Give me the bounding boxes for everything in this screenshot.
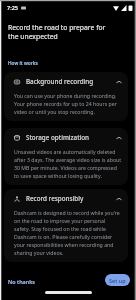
staticText: Storage optimization: [26, 133, 90, 142]
staticText: Record the road to prepare for the unexp…: [8, 23, 112, 41]
staticText: How it works: [8, 60, 38, 67]
button[interactable]: How it works: [6, 58, 40, 69]
staticText: You can use your phone during recording.…: [14, 92, 122, 115]
button[interactable]: Storage optimization: [4, 128, 128, 185]
button[interactable]: Set up: [105, 274, 130, 286]
other: Collapse: [116, 79, 122, 85]
staticText: 7:25: [7, 4, 18, 11]
other: Collapse: [116, 135, 122, 141]
staticText: No thanks: [8, 278, 35, 285]
button[interactable]: Background recording: [4, 72, 128, 121]
button[interactable]: Record responsibly: [4, 189, 128, 262]
other: Collapse: [116, 196, 122, 202]
staticText: Unsaved videos are automatically deleted…: [14, 148, 122, 179]
staticText: Dashcam is designed to record while you'…: [14, 209, 122, 256]
staticText: Background recording: [26, 77, 94, 86]
staticText: Set up: [109, 277, 126, 284]
staticText: Record responsibly: [26, 194, 84, 203]
button[interactable]: No thanks: [6, 276, 37, 287]
